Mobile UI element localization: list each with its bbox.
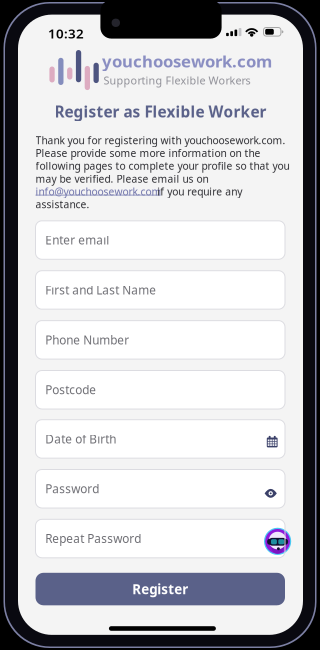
staticText: Enter email	[45, 232, 109, 248]
staticText: Postcode	[45, 382, 96, 398]
staticText: First and Last Name	[45, 282, 156, 298]
button[interactable]: Password	[35, 469, 285, 508]
staticText: following pages to complete your profile…	[35, 159, 289, 173]
staticText: assistance.	[35, 197, 89, 211]
staticText: info@youchoosework.com	[35, 184, 161, 198]
button[interactable]: Register	[35, 573, 285, 605]
staticText: Password	[45, 481, 99, 497]
staticText: if you require any	[157, 184, 242, 198]
button[interactable]: info@youchoosework.com	[35, 184, 161, 196]
staticText: Thank you for registering with youchoose…	[35, 133, 285, 147]
staticText: Supporting Flexible Workers	[103, 73, 250, 88]
button[interactable]: Postcode	[35, 370, 285, 409]
staticText: Register as Flexible Worker	[54, 101, 266, 122]
staticText: youchoosework.com	[102, 50, 272, 72]
staticText: Date of Birth	[45, 431, 116, 447]
button[interactable]: Date of Birth	[35, 420, 285, 458]
staticText: Repeat Password	[45, 531, 141, 547]
staticText: may be verified. Please email us on	[35, 172, 208, 186]
staticText: Please provide some more information on …	[35, 146, 260, 160]
button[interactable]: First and Last Name	[35, 271, 285, 309]
staticText: Phone Number	[45, 332, 129, 348]
staticText: 10:32	[48, 24, 84, 42]
button[interactable]: Phone Number	[35, 321, 285, 359]
button[interactable]: Enter email	[35, 221, 285, 259]
staticText: Register	[132, 580, 188, 598]
button[interactable]: Repeat Password	[35, 519, 285, 558]
